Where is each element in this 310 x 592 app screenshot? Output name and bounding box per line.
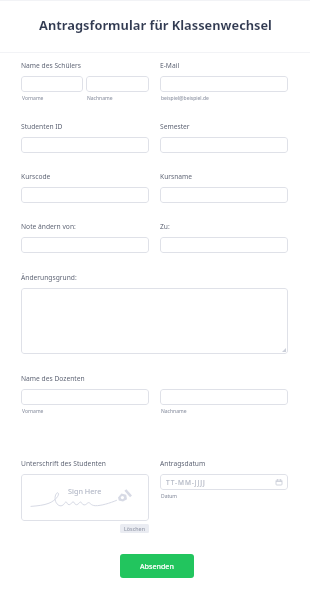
button[interactable] (21, 389, 149, 405)
staticText: Name des Dozenten (21, 374, 85, 383)
button[interactable] (86, 76, 149, 92)
staticText: Unterschrift des Studenten (21, 459, 106, 468)
staticText: Name des Schülers (21, 61, 82, 70)
staticText: Studenten ID (21, 122, 63, 131)
button[interactable] (160, 137, 288, 153)
staticText: Sign Here (68, 486, 102, 496)
staticText: Änderungsgrund: (21, 273, 77, 282)
button[interactable] (21, 137, 149, 153)
button[interactable]: Absenden (120, 554, 194, 578)
staticText: Kursname (160, 172, 193, 181)
staticText: Kurscode (21, 172, 51, 181)
button[interactable] (160, 237, 288, 253)
button[interactable]: Signature area (21, 474, 149, 521)
staticText: Löschen (124, 525, 145, 532)
button[interactable]: TT-MM-JJJJ (160, 474, 288, 490)
button[interactable] (21, 237, 149, 253)
button[interactable] (21, 288, 288, 354)
staticText: Antragsdatum (160, 459, 206, 468)
staticText: Datum (161, 493, 178, 500)
staticText: Note ändern von: (21, 222, 76, 231)
button[interactable] (21, 187, 149, 203)
staticText: Semester (160, 122, 190, 131)
staticText: Antragsformular für Klassenwechsel (39, 16, 272, 33)
staticText: Nachname (161, 408, 187, 415)
staticText: Zu: (160, 222, 170, 231)
button[interactable] (160, 389, 288, 405)
button[interactable] (160, 76, 288, 92)
other: Pick date (276, 479, 282, 485)
staticText: Nachname (87, 95, 113, 102)
staticText: beispiel@beispiel.de (161, 95, 209, 102)
button[interactable] (160, 187, 288, 203)
staticText: TT-MM-JJJJ (166, 478, 206, 487)
staticText: Vorname (22, 408, 44, 415)
staticText: Vorname (22, 95, 44, 102)
button[interactable] (21, 76, 83, 92)
staticText: E-Mail (160, 61, 180, 70)
staticText: Absenden (140, 561, 174, 571)
button[interactable]: Löschen (120, 524, 149, 533)
